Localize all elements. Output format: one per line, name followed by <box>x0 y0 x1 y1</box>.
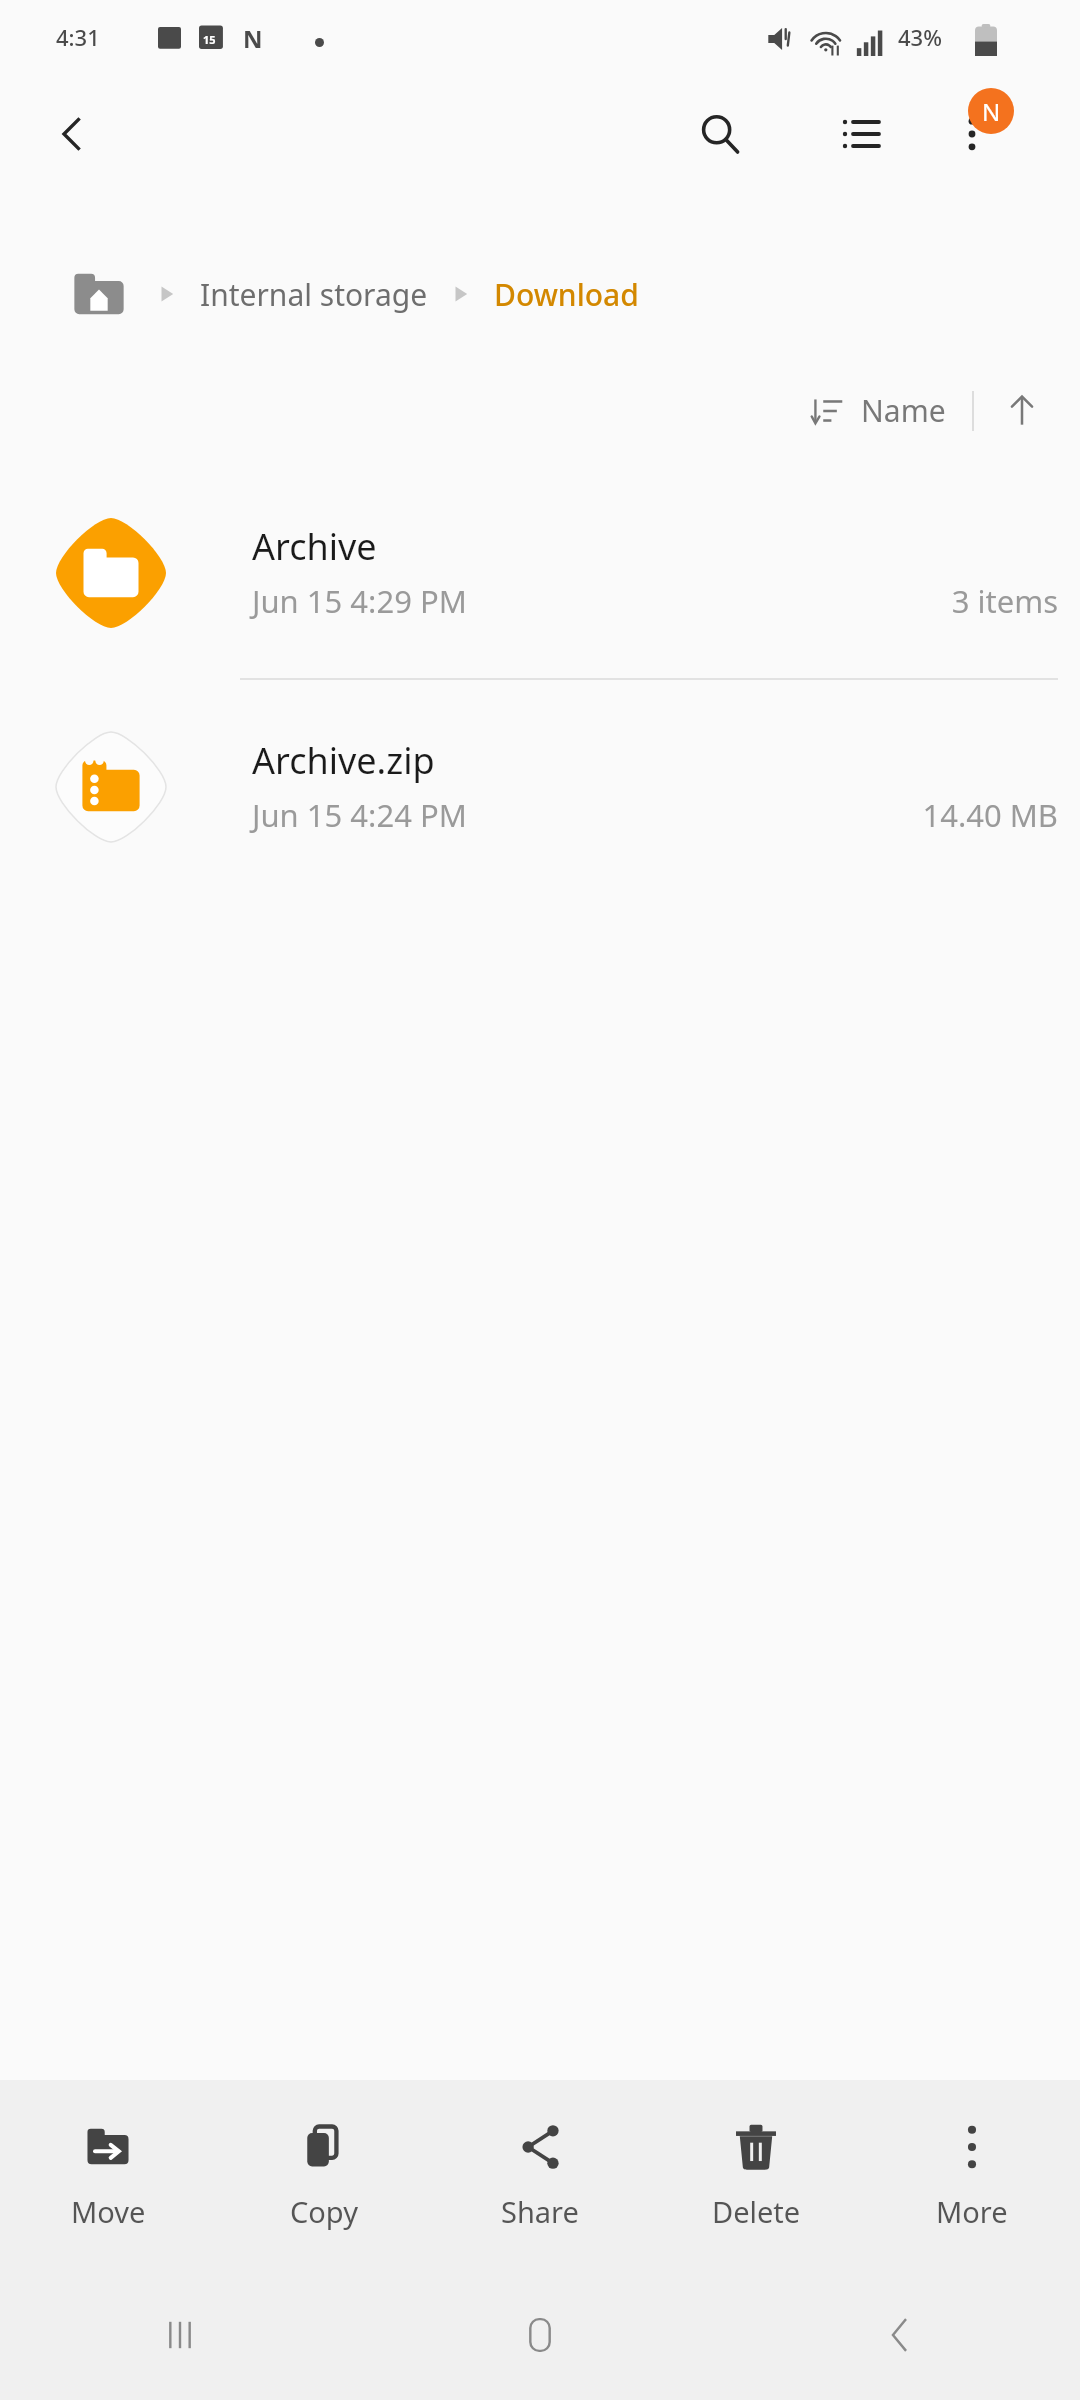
button[interactable]: Internal storage root <box>68 263 130 325</box>
staticText: Name <box>861 390 946 431</box>
button[interactable]: More options <box>936 98 1008 170</box>
button[interactable]: Download <box>494 274 639 315</box>
staticText: 15 <box>203 32 216 47</box>
button[interactable]: Copy <box>216 2110 432 2241</box>
staticText: 43% <box>898 22 942 52</box>
button[interactable]: Name <box>801 378 956 443</box>
staticText: Jun 15 4:29 PM <box>252 580 467 622</box>
button[interactable]: Sort ascending <box>990 379 1054 443</box>
button[interactable]: Internal storage <box>200 274 428 315</box>
button[interactable]: Back <box>720 2270 1080 2400</box>
button[interactable]: Delete <box>648 2110 864 2241</box>
staticText: N <box>243 22 263 55</box>
staticText: Share <box>501 2192 579 2231</box>
staticText: 3 items <box>951 580 1058 622</box>
staticText: Archive <box>252 522 377 571</box>
staticText: 14.40 MB <box>922 794 1058 836</box>
staticText: Jun 15 4:24 PM <box>252 794 467 836</box>
staticText: Download <box>494 274 639 315</box>
button[interactable]: Share <box>432 2110 648 2241</box>
button[interactable]: View as <box>825 98 897 170</box>
staticText: Archive.zip <box>252 736 435 785</box>
button[interactable]: Search <box>684 98 756 170</box>
button[interactable]: Back <box>36 98 108 170</box>
button[interactable]: More <box>864 2110 1080 2241</box>
button[interactable]: Move <box>0 2110 216 2241</box>
staticText: Internal storage <box>200 274 428 315</box>
button[interactable]: Archive <box>0 466 1080 678</box>
staticText: More <box>936 2192 1008 2231</box>
staticText: Delete <box>712 2192 801 2231</box>
button[interactable]: Archive.zip <box>0 680 1080 892</box>
button[interactable]: Recents <box>0 2270 360 2400</box>
staticText: Copy <box>290 2192 358 2231</box>
staticText: 4:31 <box>56 22 100 52</box>
staticText: Move <box>71 2192 146 2231</box>
staticText: N <box>982 95 1001 128</box>
button[interactable]: Home <box>360 2270 720 2400</box>
